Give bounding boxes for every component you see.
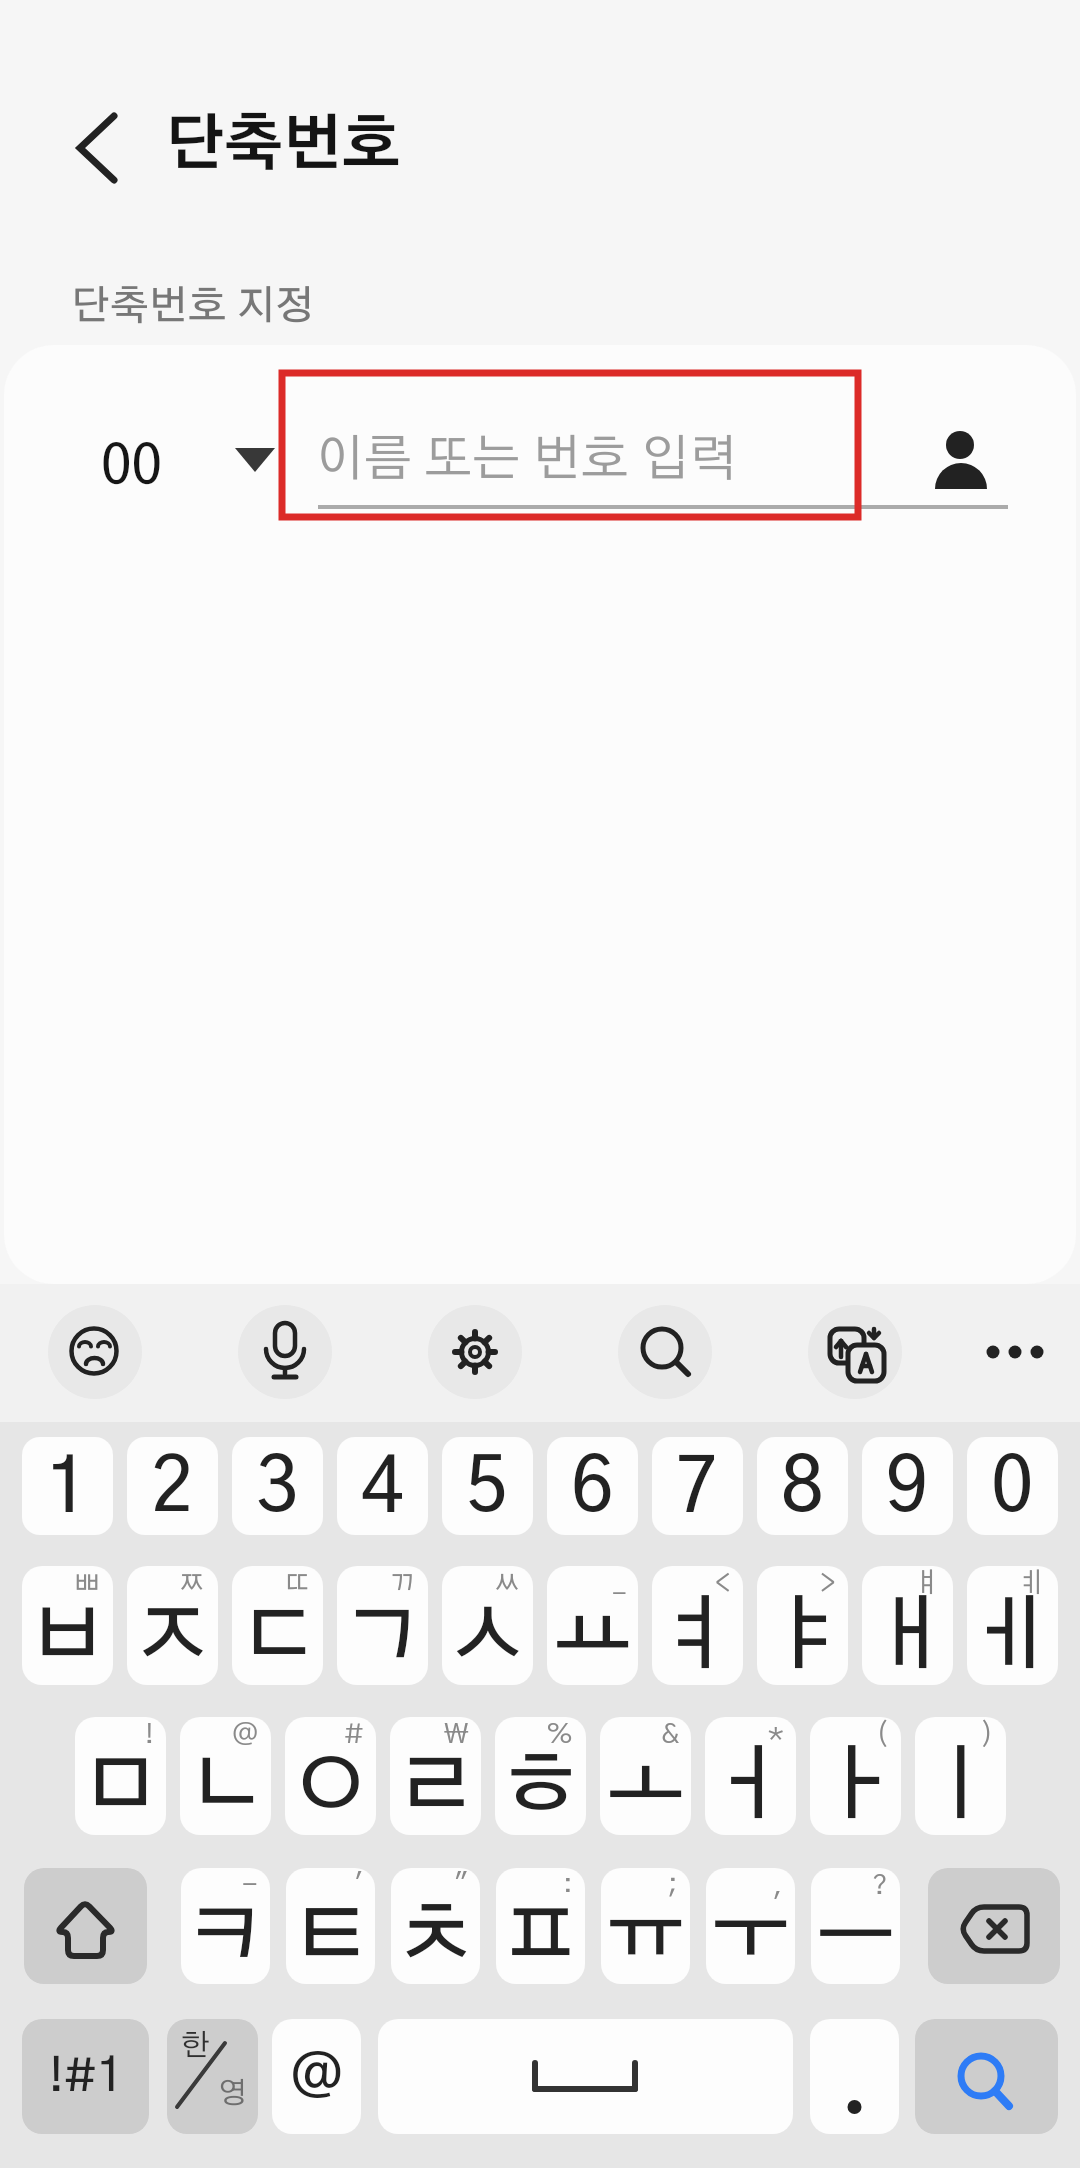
staticText: 7 bbox=[676, 1451, 719, 1526]
staticText: ㅃ bbox=[73, 1570, 101, 1598]
staticText: * bbox=[768, 1721, 784, 1749]
button[interactable]: ㅂ bbox=[22, 1566, 113, 1685]
button[interactable] bbox=[920, 420, 1002, 500]
staticText: & bbox=[661, 1721, 679, 1749]
staticText: 1 bbox=[46, 1451, 89, 1526]
button[interactable]: ㅅ bbox=[442, 1566, 533, 1685]
button[interactable] bbox=[915, 2019, 1058, 2134]
button[interactable]: ㅐ bbox=[862, 1566, 953, 1685]
staticText: @ bbox=[290, 2049, 344, 2105]
button[interactable]: ㅎ bbox=[495, 1717, 586, 1835]
button[interactable]: ㅍ bbox=[496, 1868, 585, 1984]
button[interactable]: ㅛ bbox=[547, 1566, 638, 1685]
button[interactable]: ㅡ bbox=[811, 1868, 900, 1984]
button[interactable] bbox=[24, 1868, 147, 1984]
button[interactable]: ㅁ bbox=[75, 1717, 166, 1835]
button[interactable] bbox=[48, 1305, 142, 1399]
button[interactable]: ㄱ bbox=[337, 1566, 428, 1685]
button[interactable] bbox=[378, 2019, 793, 2134]
staticText: ㅡ bbox=[815, 1897, 897, 1979]
button[interactable]: ㅈ bbox=[127, 1566, 218, 1685]
button[interactable]: 4 bbox=[337, 1437, 428, 1535]
button[interactable]: ㅔ bbox=[967, 1566, 1058, 1685]
button[interactable]: ㄹ bbox=[390, 1717, 481, 1835]
staticText: ㅖ bbox=[1018, 1570, 1046, 1598]
button[interactable]: 8 bbox=[757, 1437, 848, 1535]
button[interactable]: 3 bbox=[232, 1437, 323, 1535]
button[interactable]: ㄴ bbox=[180, 1717, 271, 1835]
staticText: ㅅ bbox=[447, 1597, 529, 1679]
button[interactable] bbox=[618, 1305, 712, 1399]
staticText: < bbox=[715, 1570, 731, 1598]
button[interactable]: @ bbox=[272, 2019, 361, 2134]
button[interactable] bbox=[238, 1305, 332, 1399]
staticText: ㅌ bbox=[290, 1897, 372, 1979]
staticText: ㄲ bbox=[388, 1570, 416, 1598]
staticText: ₩ bbox=[444, 1721, 469, 1749]
button[interactable] bbox=[928, 1868, 1060, 1984]
button[interactable]: 5 bbox=[442, 1437, 533, 1535]
staticText: ㅓ bbox=[710, 1747, 792, 1829]
button[interactable] bbox=[810, 2019, 899, 2134]
staticText: ( bbox=[876, 1721, 889, 1749]
staticText: 9 bbox=[886, 1451, 929, 1526]
button[interactable] bbox=[318, 400, 1008, 510]
staticText: ) bbox=[981, 1721, 994, 1749]
button[interactable]: ㅏ bbox=[810, 1717, 901, 1835]
staticText: ㅇ bbox=[290, 1747, 372, 1829]
staticText: 0 bbox=[991, 1451, 1034, 1526]
staticText: ㅎ bbox=[500, 1747, 582, 1829]
staticText: ' bbox=[354, 1872, 363, 1900]
button[interactable]: ㅓ bbox=[705, 1717, 796, 1835]
staticText: 영 bbox=[218, 2079, 247, 2109]
staticText: ㅉ bbox=[178, 1570, 206, 1598]
button[interactable]: ㅣ bbox=[915, 1717, 1006, 1835]
staticText: ㅋ bbox=[185, 1897, 267, 1979]
staticText: ㅍ bbox=[500, 1897, 582, 1979]
staticText: ㄷ bbox=[237, 1597, 319, 1679]
button[interactable]: ㅊ bbox=[391, 1868, 480, 1984]
button[interactable] bbox=[58, 106, 138, 190]
staticText: ㅜ bbox=[710, 1897, 792, 1979]
button[interactable]: ㅕ bbox=[652, 1566, 743, 1685]
staticText: ㅊ bbox=[395, 1897, 477, 1979]
staticText: ㄹ bbox=[395, 1747, 477, 1829]
staticText: _ bbox=[613, 1570, 626, 1598]
button[interactable] bbox=[80, 420, 280, 500]
button[interactable]: !#1 bbox=[22, 2019, 149, 2134]
button[interactable]: ㅗ bbox=[600, 1717, 691, 1835]
staticText: ㅐ bbox=[867, 1597, 949, 1679]
staticText: 6 bbox=[571, 1451, 614, 1526]
button[interactable]: 0 bbox=[967, 1437, 1058, 1535]
button[interactable]: 9 bbox=[862, 1437, 953, 1535]
staticText: ㅗ bbox=[605, 1747, 687, 1829]
button[interactable]: 2 bbox=[127, 1437, 218, 1535]
button[interactable]: ㅜ bbox=[706, 1868, 795, 1984]
button[interactable]: 6 bbox=[547, 1437, 638, 1535]
staticText: 5 bbox=[466, 1451, 509, 1526]
button[interactable]: 7 bbox=[652, 1437, 743, 1535]
button[interactable]: ㅑ bbox=[757, 1566, 848, 1685]
button[interactable] bbox=[968, 1305, 1062, 1399]
button[interactable]: 1 bbox=[22, 1437, 113, 1535]
button[interactable] bbox=[808, 1305, 902, 1399]
staticText: 00 bbox=[101, 441, 163, 491]
button[interactable]: ㅋ bbox=[181, 1868, 270, 1984]
button[interactable]: 한 bbox=[167, 2019, 258, 2134]
staticText: ㅠ bbox=[605, 1897, 687, 1979]
staticText: 단축번호 지정 bbox=[71, 287, 315, 327]
button[interactable] bbox=[428, 1305, 522, 1399]
staticText: ! bbox=[145, 1721, 154, 1749]
staticText: ㅆ bbox=[493, 1570, 521, 1598]
staticText: ㄴ bbox=[185, 1747, 267, 1829]
staticText: ㄱ bbox=[342, 1597, 424, 1679]
button[interactable]: ㅌ bbox=[286, 1868, 375, 1984]
button[interactable]: ㄷ bbox=[232, 1566, 323, 1685]
button[interactable]: ㅠ bbox=[601, 1868, 690, 1984]
staticText: ㅛ bbox=[552, 1597, 634, 1679]
staticText: ㅂ bbox=[27, 1597, 109, 1679]
staticText: ㅔ bbox=[972, 1597, 1054, 1679]
staticText: 3 bbox=[256, 1451, 299, 1526]
button[interactable]: ㅇ bbox=[285, 1717, 376, 1835]
staticText: 2 bbox=[151, 1451, 194, 1526]
